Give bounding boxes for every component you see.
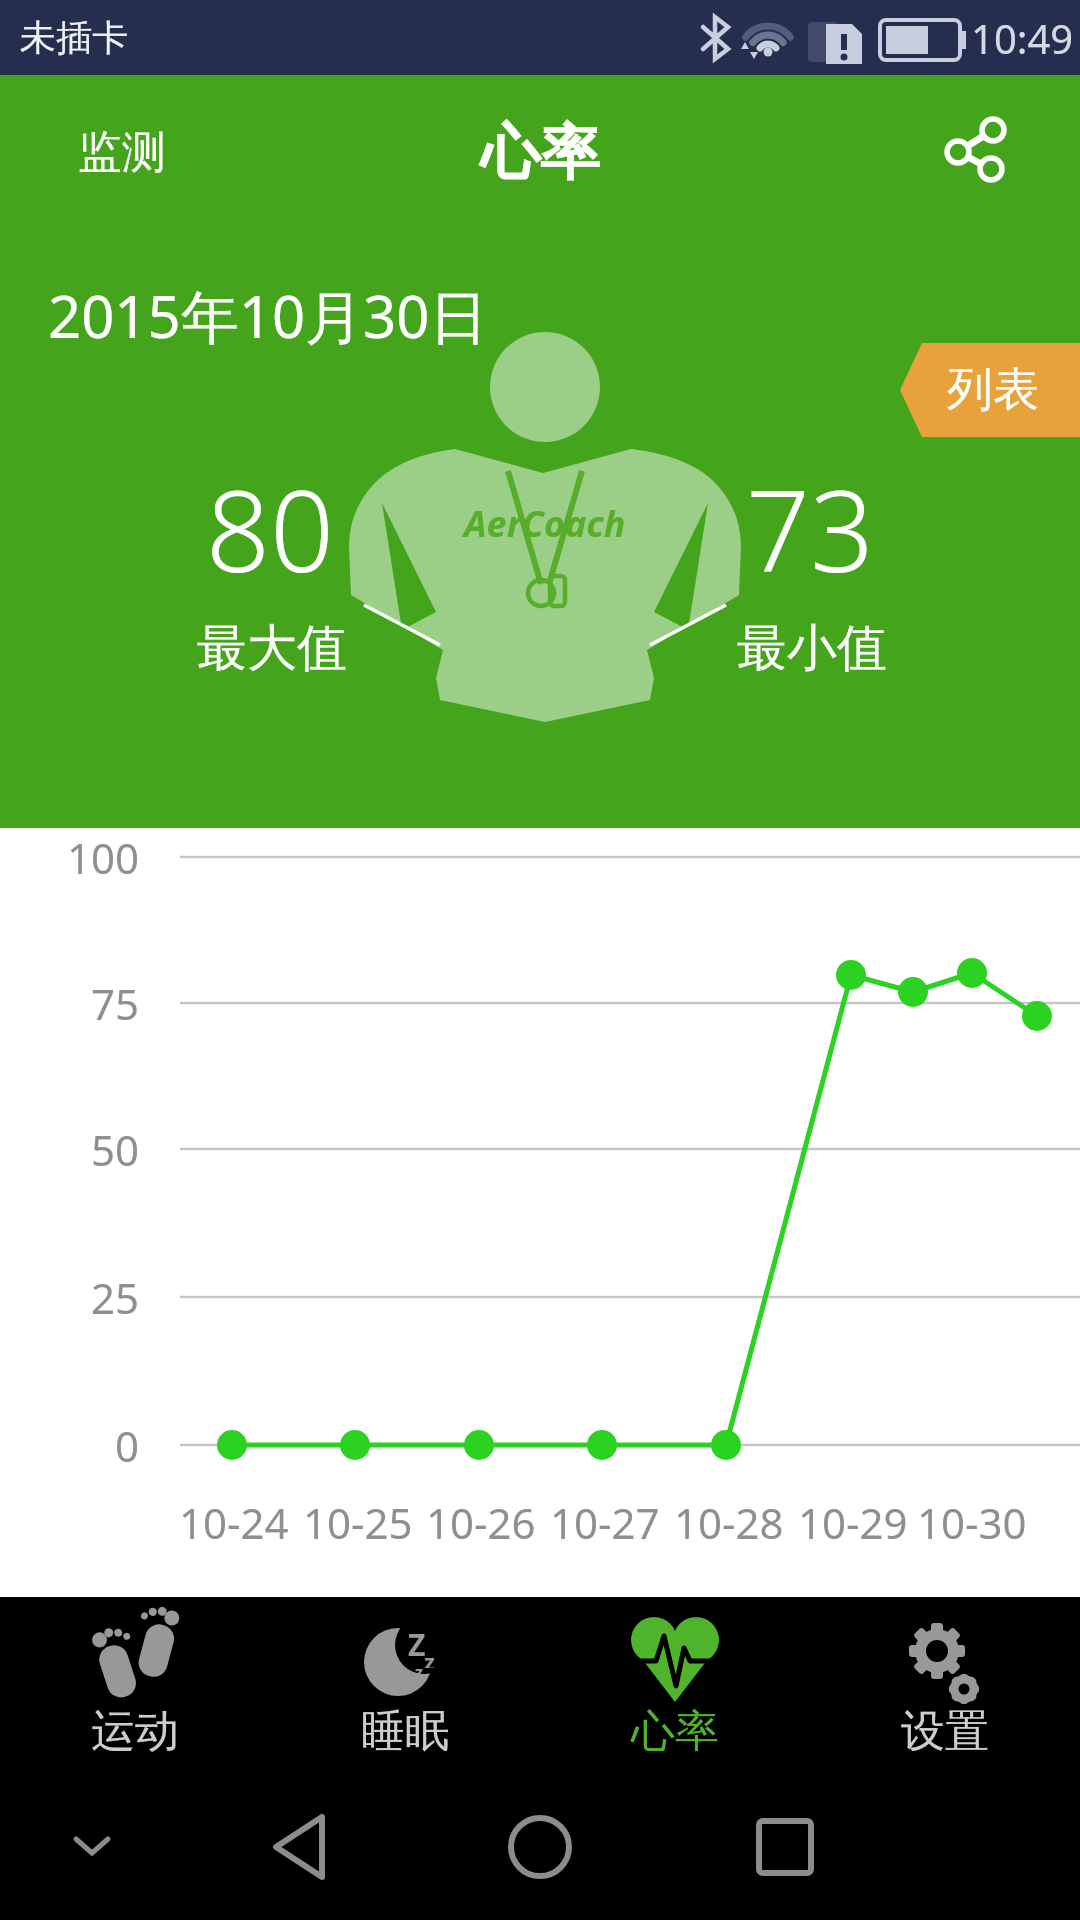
staticText: 50 — [91, 1121, 140, 1178]
staticText: z — [415, 1661, 423, 1679]
staticText: 10-26 — [426, 1494, 536, 1551]
staticText: 100 — [67, 829, 140, 886]
staticText: 设置 — [901, 1704, 989, 1759]
staticText: 最大值 — [197, 617, 347, 680]
staticText: 最小值 — [737, 617, 887, 680]
staticText: 25 — [91, 1269, 140, 1326]
staticText: 睡眠 — [361, 1704, 449, 1759]
button[interactable] — [0, 1597, 270, 1782]
button[interactable] — [935, 110, 1020, 195]
button[interactable]: 列表 — [905, 343, 1080, 437]
staticText: AerCoach — [464, 499, 626, 548]
staticText: 未插卡 — [20, 15, 128, 60]
staticText: 10-28 — [674, 1494, 784, 1551]
staticText: 心率 — [631, 1704, 719, 1759]
button[interactable] — [60, 1810, 124, 1880]
staticText: 监测 — [78, 125, 166, 180]
button[interactable] — [270, 1597, 540, 1782]
staticText: 10-27 — [550, 1494, 660, 1551]
staticText: 10-24 — [179, 1494, 289, 1551]
staticText: 10-25 — [303, 1494, 413, 1551]
button[interactable] — [540, 1597, 810, 1782]
staticText: z — [424, 1646, 435, 1668]
button[interactable]: 监测 — [78, 110, 238, 195]
staticText: 心率 — [480, 115, 600, 191]
staticText: 10-29 — [798, 1494, 908, 1551]
staticText: 10:49 — [971, 11, 1074, 65]
button[interactable] — [730, 1800, 840, 1900]
button[interactable] — [810, 1597, 1080, 1782]
staticText: Z — [408, 1624, 426, 1658]
staticText: 列表 — [947, 361, 1039, 419]
button[interactable] — [245, 1800, 355, 1900]
staticText: 73 — [746, 452, 874, 588]
staticText: 10-30 — [917, 1494, 1027, 1551]
staticText: 0 — [115, 1417, 140, 1474]
staticText: 75 — [91, 975, 140, 1032]
button[interactable] — [485, 1800, 595, 1900]
staticText: 2015年10月30日 — [48, 276, 488, 355]
staticText: 80 — [206, 452, 334, 588]
staticText: 运动 — [91, 1704, 179, 1759]
